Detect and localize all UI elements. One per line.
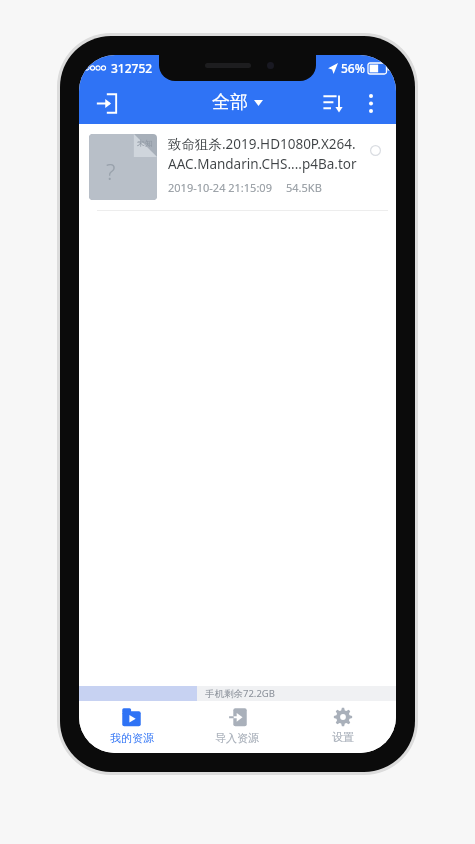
staticText: 全部 <box>212 91 248 114</box>
staticText: 2019-10-24 21:15:09 <box>168 180 272 195</box>
button[interactable]: Sort <box>314 84 352 122</box>
button[interactable]: Import <box>87 84 125 122</box>
button[interactable]: 导入资源 <box>184 701 290 753</box>
button[interactable]: 全部 <box>206 87 269 118</box>
button[interactable]: 设置 <box>290 701 396 753</box>
staticText: 未知 <box>137 138 153 148</box>
staticText: 312752 <box>111 60 153 76</box>
button[interactable]: Select <box>364 139 386 161</box>
staticText: ? <box>106 156 116 186</box>
staticText: 致命狙杀.2019.HD1080P.X264.AAC.Mandarin.CHS.… <box>168 135 358 173</box>
staticText: 54.5KB <box>286 180 322 195</box>
staticText: 我的资源 <box>110 731 154 745</box>
staticText: 导入资源 <box>215 731 259 745</box>
button[interactable]: 我的资源 <box>79 701 184 753</box>
staticText: 设置 <box>332 730 354 744</box>
staticText: 手机剩余72.2GB <box>205 687 275 700</box>
staticText: 56% <box>341 60 365 76</box>
button[interactable]: 未知 <box>79 124 396 210</box>
button[interactable]: More options <box>352 84 390 122</box>
